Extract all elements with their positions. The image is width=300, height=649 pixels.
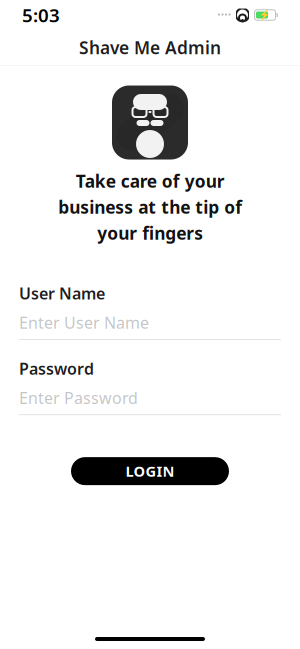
staticText: Shave Me Admin — [79, 36, 221, 59]
staticText: Enter User Name — [19, 312, 149, 333]
button[interactable]: User Name — [19, 283, 281, 340]
staticText: User Name — [19, 283, 105, 304]
staticText: 5:03 — [22, 3, 60, 27]
staticText: ⚡ — [259, 10, 271, 20]
staticText: Enter Password — [19, 387, 138, 408]
button[interactable]: LOGIN — [71, 457, 229, 485]
staticText: Take care of your business at the tip of… — [58, 169, 242, 245]
staticText: LOGIN — [125, 461, 174, 481]
staticText: Password — [19, 358, 94, 379]
button[interactable]: Password — [19, 358, 281, 415]
